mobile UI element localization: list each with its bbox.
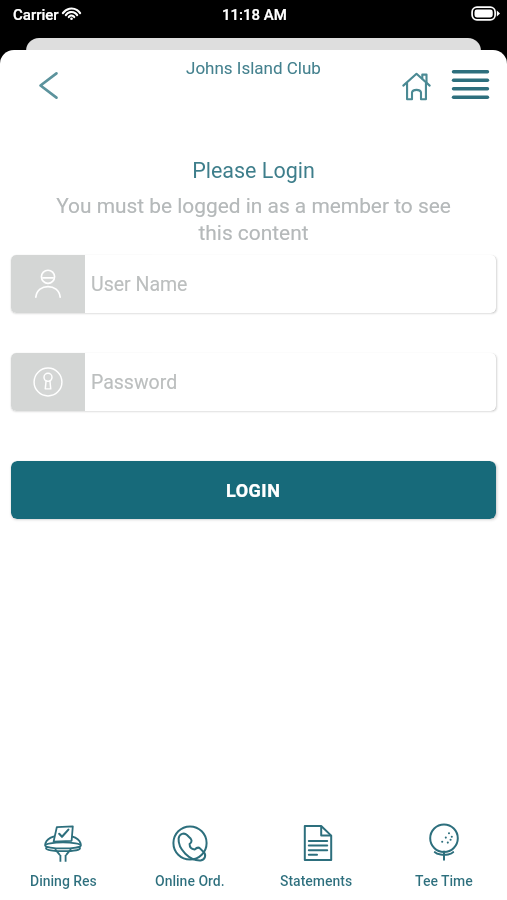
button[interactable]: Online Ord. — [126, 812, 253, 900]
button[interactable]: Menu — [447, 61, 493, 107]
staticText: Dining Res — [30, 873, 97, 889]
button[interactable]: Back — [24, 61, 72, 109]
button[interactable]: Dining Res — [0, 812, 126, 900]
staticText: Carrier — [13, 6, 59, 24]
button[interactable]: Statements — [253, 812, 380, 900]
staticText: Statements — [280, 873, 353, 889]
staticText: You must be logged in as a member to see… — [28, 194, 479, 245]
button[interactable]: Home — [393, 63, 439, 109]
button[interactable]: Tee Time — [380, 812, 507, 900]
button[interactable]: User Name — [11, 255, 496, 313]
staticText: Please Login — [0, 158, 507, 183]
button[interactable]: Password — [11, 353, 496, 411]
staticText: User Name — [91, 273, 188, 296]
staticText: Online Ord. — [155, 873, 225, 889]
staticText: Password — [91, 371, 178, 394]
staticText: 11:18 AM — [222, 6, 287, 24]
button[interactable]: LOGIN — [11, 461, 496, 519]
staticText: Johns Island Club — [186, 58, 321, 78]
staticText: LOGIN — [226, 480, 281, 501]
staticText: Tee Time — [415, 873, 473, 889]
